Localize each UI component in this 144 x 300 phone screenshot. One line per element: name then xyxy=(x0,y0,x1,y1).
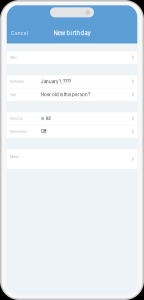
staticText: Who xyxy=(10,56,17,60)
staticText: Reminders xyxy=(10,130,27,133)
staticText: New birthday xyxy=(53,30,90,37)
staticText: Notes xyxy=(10,155,19,159)
staticText: Remind xyxy=(10,117,22,120)
button[interactable]: Reminders xyxy=(7,125,137,138)
button[interactable]: Cancel xyxy=(7,28,33,39)
staticText: Age xyxy=(10,93,16,96)
button[interactable]: Age xyxy=(7,88,137,101)
button[interactable]: Who xyxy=(7,51,137,64)
staticText: January 1, ???? xyxy=(41,79,71,84)
button[interactable]: Remind xyxy=(7,112,137,125)
staticText: Birthdate xyxy=(10,80,24,84)
button[interactable]: Notes xyxy=(7,149,137,169)
staticText: How old is this person? xyxy=(41,92,90,97)
staticText: Off xyxy=(41,129,47,134)
staticText: Cancel xyxy=(11,30,28,36)
button[interactable]: Birthdate xyxy=(7,75,137,88)
staticText: All xyxy=(46,116,51,121)
